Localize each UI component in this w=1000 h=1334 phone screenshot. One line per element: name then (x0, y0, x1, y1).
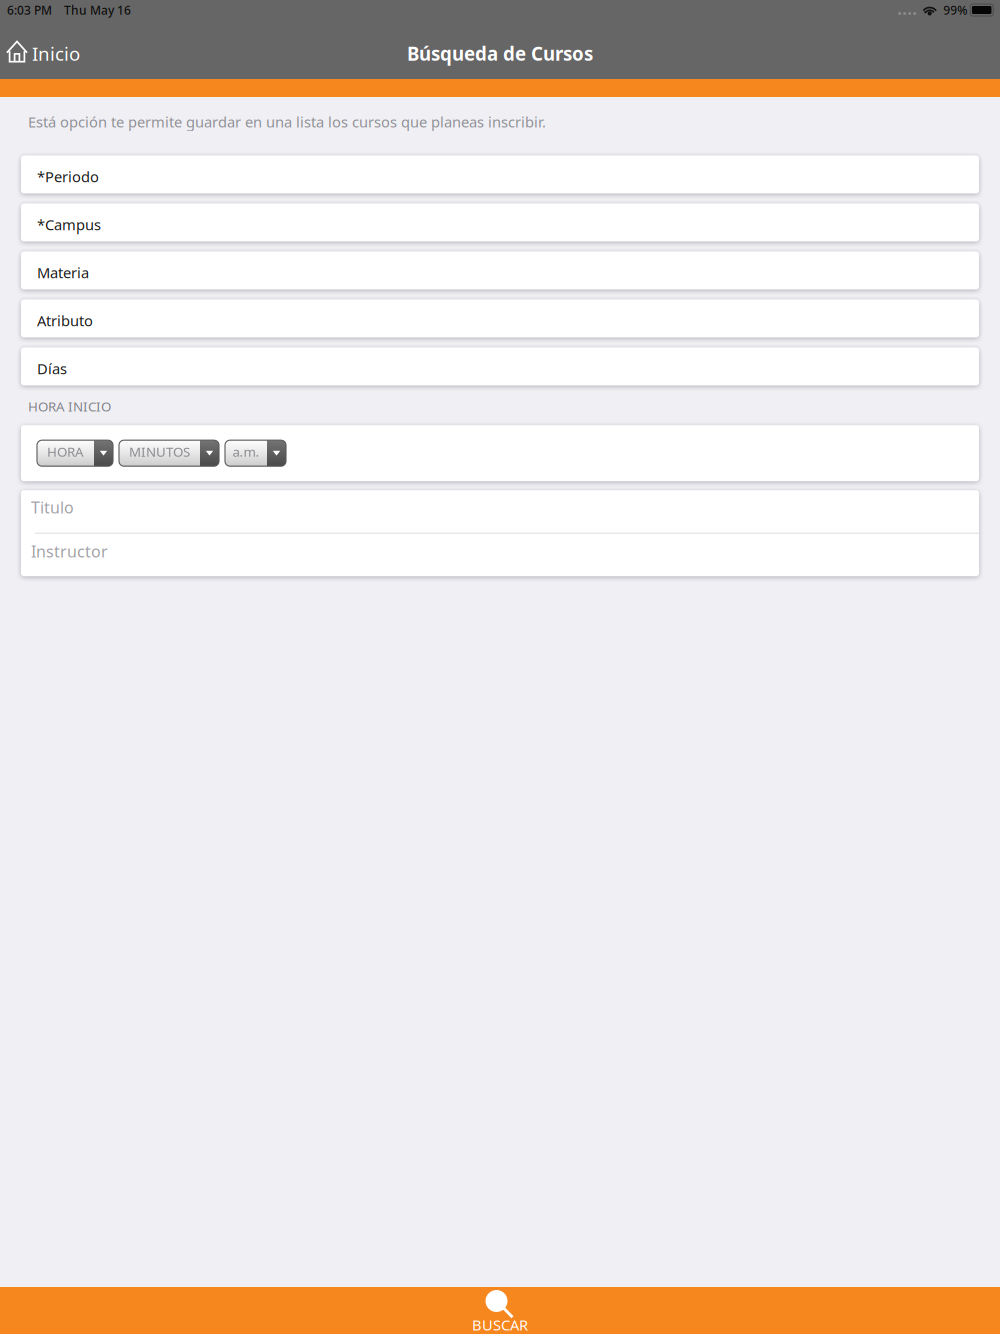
button[interactable]: Instructor (21, 534, 979, 577)
staticText: Instructor (31, 541, 108, 562)
staticText: a.m. (232, 443, 259, 460)
staticText: Thu May 16 (64, 2, 131, 18)
staticText: 99% (943, 2, 967, 18)
button[interactable]: Días (21, 347, 979, 385)
staticText: Está opción te permite guardar en una li… (28, 112, 546, 131)
staticText: Inicio (32, 41, 80, 66)
button[interactable]: Atributo (21, 299, 979, 337)
staticText: Búsqueda de Cursos (407, 41, 593, 66)
button[interactable]: MINUTOS (119, 440, 219, 466)
staticText: MINUTOS (129, 443, 190, 460)
button[interactable]: Inicio (0, 28, 90, 79)
staticText: HORA (47, 443, 84, 460)
staticText: Atributo (37, 311, 93, 330)
button[interactable]: HORA (37, 440, 113, 466)
button[interactable]: BUSCAR (0, 1287, 1000, 1334)
staticText: Titulo (31, 497, 74, 518)
button[interactable]: *Campus (21, 203, 979, 241)
staticText: Días (37, 359, 67, 378)
staticText: Materia (37, 263, 89, 282)
button[interactable]: Materia (21, 251, 979, 289)
button[interactable]: *Periodo (21, 155, 979, 193)
button[interactable]: a.m. (225, 440, 286, 466)
staticText: *Periodo (37, 167, 99, 186)
staticText: *Campus (37, 215, 101, 234)
button[interactable]: Titulo (21, 490, 979, 533)
staticText: 6:03 PM (7, 2, 52, 18)
staticText: BUSCAR (472, 1315, 528, 1334)
staticText: HORA INICIO (28, 397, 111, 415)
